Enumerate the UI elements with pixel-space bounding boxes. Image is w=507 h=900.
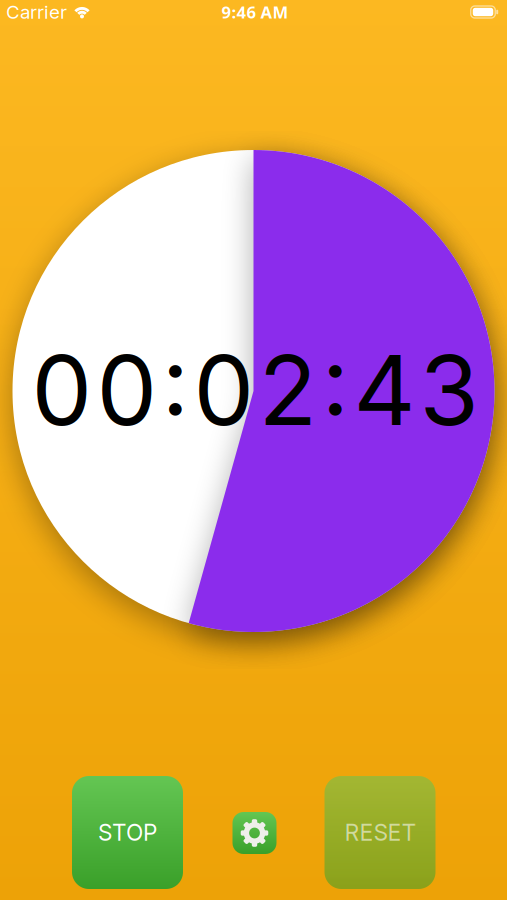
staticText: 00:02:43 xyxy=(31,332,478,448)
button[interactable]: STOP xyxy=(72,776,183,889)
button[interactable]: RESET xyxy=(324,776,435,889)
staticText: STOP xyxy=(98,819,157,846)
staticText: 9:46 AM xyxy=(221,1,288,23)
staticText: Carrier xyxy=(6,1,67,23)
staticText: RESET xyxy=(344,819,415,846)
button[interactable]: Settings xyxy=(232,812,276,854)
